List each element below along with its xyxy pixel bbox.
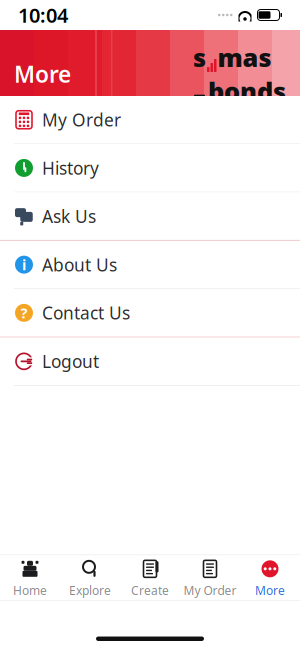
staticText: 10:04 [18, 2, 68, 28]
button[interactable]: More [240, 551, 300, 604]
button[interactable]: Ask Us [0, 192, 300, 240]
staticText: Create [131, 582, 169, 598]
staticText: Contact Us [42, 301, 130, 324]
button[interactable]: Logout [0, 338, 300, 385]
button[interactable]: i [0, 241, 300, 288]
staticText: About Us [42, 253, 117, 276]
button[interactable]: Create [120, 551, 180, 604]
button[interactable]: My Order [180, 551, 240, 604]
staticText: More [14, 59, 71, 89]
staticText: mas [217, 40, 271, 74]
staticText: Explore [69, 582, 111, 598]
staticText: Ask Us [42, 205, 96, 228]
staticText: My Order [183, 582, 236, 598]
staticText: History [42, 156, 99, 179]
staticText: s [193, 40, 206, 74]
button[interactable]: Explore [60, 551, 120, 604]
staticText: Logout [42, 350, 99, 373]
staticText: Home [13, 582, 47, 598]
button[interactable]: ? [0, 289, 300, 337]
staticText: bonds [208, 74, 286, 108]
button[interactable]: Home [0, 551, 60, 604]
staticText: My Order [42, 108, 121, 131]
staticText: ? [20, 303, 27, 323]
button[interactable]: History [0, 144, 300, 192]
button[interactable]: My Order [0, 96, 300, 143]
staticText: i [22, 255, 26, 274]
staticText: More [255, 582, 285, 598]
